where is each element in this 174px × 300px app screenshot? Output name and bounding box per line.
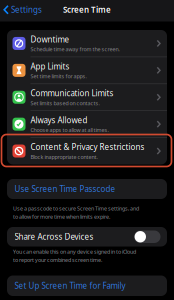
- staticText: to allow for more time when limits expir…: [13, 213, 110, 220]
- staticText: Share Across Devices: [14, 231, 93, 242]
- staticText: Set Up Screen Time for Family: [14, 280, 125, 291]
- staticText: Communication Limits: [30, 88, 113, 98]
- staticText: Settings: [11, 4, 42, 15]
- staticText: Set limits based on contacts.: [30, 99, 99, 107]
- staticText: to report your combined screen time.: [13, 256, 102, 263]
- button[interactable]: App Limits: [7, 57, 167, 84]
- staticText: Downtime: [30, 34, 69, 45]
- button[interactable]: Content & Privacy Restrictions: [7, 138, 167, 164]
- staticText: Use a passcode to secure Screen Time set…: [13, 205, 139, 212]
- staticText: Block inappropriate content.: [30, 153, 97, 160]
- staticText: Screen Time: [63, 4, 111, 15]
- staticText: Set time limits for apps.: [30, 73, 86, 80]
- staticText: Always Allowed: [30, 115, 87, 125]
- button[interactable]: Communication Limits: [7, 84, 167, 111]
- button[interactable]: Use Screen Time Passcode: [7, 179, 167, 199]
- button[interactable]: Set Up Screen Time for Family: [7, 275, 167, 296]
- staticText: Content & Privacy Restrictions: [30, 142, 144, 152]
- button[interactable]: Share Across Devices: [134, 230, 160, 243]
- staticText: You can enable this on any device signed…: [13, 248, 136, 255]
- staticText: Choose apps to allow at all times.: [30, 126, 108, 133]
- staticText: Use Screen Time Passcode: [14, 184, 115, 194]
- button[interactable]: Settings: [0, 4, 42, 15]
- button[interactable]: Downtime: [7, 30, 167, 57]
- staticText: App Limits: [30, 61, 69, 72]
- staticText: Schedule time away from the screen.: [30, 46, 119, 53]
- button[interactable]: Always Allowed: [7, 111, 167, 138]
